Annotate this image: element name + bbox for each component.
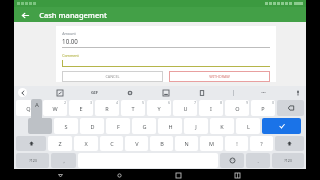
- button[interactable]: Stickers: [161, 88, 170, 97]
- button[interactable]: Shift: [16, 136, 46, 151]
- button[interactable]: Back: [56, 171, 64, 179]
- button[interactable]: Screenshot: [233, 171, 241, 179]
- button[interactable]: L: [236, 118, 260, 134]
- staticText: 2: [64, 101, 66, 105]
- staticText: 8: [220, 101, 222, 105]
- button[interactable]: GIF: [91, 90, 98, 96]
- button[interactable]: B: [150, 136, 173, 151]
- staticText: 10.00: [62, 37, 78, 45]
- button[interactable]: F: [106, 118, 130, 134]
- staticText: K: [220, 123, 224, 130]
- button[interactable]: [28, 118, 52, 134]
- button[interactable]: Enter: [262, 118, 301, 134]
- staticText: !: [236, 140, 238, 147]
- staticText: ?: [260, 140, 263, 147]
- button[interactable]: Expand toolbar: [18, 88, 27, 97]
- staticText: 9: [246, 101, 248, 105]
- button[interactable]: N: [175, 136, 198, 151]
- button[interactable]: W: [43, 100, 67, 116]
- staticText: 3: [90, 101, 92, 105]
- button[interactable]: ?: [250, 136, 273, 151]
- button[interactable]: M: [200, 136, 223, 151]
- staticText: A: [35, 101, 39, 109]
- staticText: ,: [63, 158, 65, 164]
- staticText: •••: [261, 90, 266, 95]
- staticText: W: [52, 105, 58, 112]
- button[interactable]: ?123: [16, 153, 49, 168]
- button[interactable]: D: [80, 118, 104, 134]
- button[interactable]: WITHDRAW: [169, 71, 270, 82]
- button[interactable]: •••: [261, 90, 266, 95]
- staticText: O: [235, 105, 240, 112]
- staticText: J: [195, 123, 197, 130]
- staticText: S: [64, 123, 68, 130]
- button[interactable]: G: [132, 118, 156, 134]
- button[interactable]: T: [121, 100, 145, 116]
- staticText: U: [183, 105, 188, 112]
- staticText: Y: [157, 105, 161, 112]
- staticText: 6: [168, 101, 170, 105]
- staticText: F: [117, 123, 120, 130]
- button[interactable]: J: [184, 118, 208, 134]
- staticText: ?123: [29, 158, 37, 163]
- staticText: P: [261, 105, 265, 112]
- button[interactable]: P: [251, 100, 275, 116]
- button[interactable]: Emoji: [220, 153, 244, 168]
- button[interactable]: Back: [19, 9, 31, 21]
- staticText: C: [110, 140, 114, 147]
- staticText: R: [105, 105, 109, 112]
- staticText: D: [90, 123, 95, 130]
- staticText: 0: [272, 101, 274, 105]
- staticText: B: [160, 140, 164, 147]
- staticText: 5: [142, 101, 144, 105]
- button[interactable]: I: [199, 100, 223, 116]
- button[interactable]: Shift: [275, 136, 304, 151]
- button[interactable]: U: [173, 100, 197, 116]
- button[interactable]: K: [210, 118, 234, 134]
- staticText: ?123: [284, 158, 292, 163]
- button[interactable]: V: [125, 136, 148, 151]
- button[interactable]: S: [54, 118, 78, 134]
- button[interactable]: E: [69, 100, 93, 116]
- staticText: WITHDRAW: [209, 74, 230, 79]
- staticText: GIF: [91, 90, 98, 96]
- button[interactable]: Settings: [125, 88, 134, 97]
- staticText: CANCEL: [105, 74, 120, 79]
- staticText: Z: [58, 140, 62, 147]
- button[interactable]: H: [158, 118, 182, 134]
- button[interactable]: Y: [147, 100, 171, 116]
- staticText: 4: [116, 101, 118, 105]
- staticText: H: [168, 123, 173, 130]
- staticText: Q: [26, 105, 31, 112]
- button[interactable]: Home: [115, 171, 123, 179]
- staticText: G: [142, 123, 147, 130]
- staticText: I: [210, 105, 212, 112]
- button[interactable]: !: [225, 136, 248, 151]
- staticText: Amount: [62, 31, 76, 36]
- staticText: E: [79, 105, 83, 112]
- button[interactable]: ?123: [272, 153, 304, 168]
- button[interactable]: CANCEL: [62, 71, 163, 82]
- staticText: Comment: [62, 53, 79, 58]
- button[interactable]: Clipboard: [197, 88, 206, 97]
- staticText: N: [184, 140, 189, 147]
- staticText: X: [84, 140, 88, 147]
- button[interactable]: Voice input: [293, 88, 302, 97]
- button[interactable]: Z: [48, 136, 72, 151]
- button[interactable]: Recents: [174, 171, 182, 179]
- button[interactable]: R: [95, 100, 119, 116]
- button[interactable]: Themes: [55, 88, 64, 97]
- button[interactable]: X: [74, 136, 98, 151]
- button[interactable]: C: [100, 136, 123, 151]
- staticText: L: [247, 123, 250, 130]
- button[interactable]: Q: [16, 100, 41, 116]
- staticText: V: [135, 140, 139, 147]
- staticText: 7: [194, 101, 196, 105]
- staticText: M: [209, 140, 214, 147]
- button[interactable]: Backspace: [277, 100, 304, 116]
- button[interactable]: O: [225, 100, 249, 116]
